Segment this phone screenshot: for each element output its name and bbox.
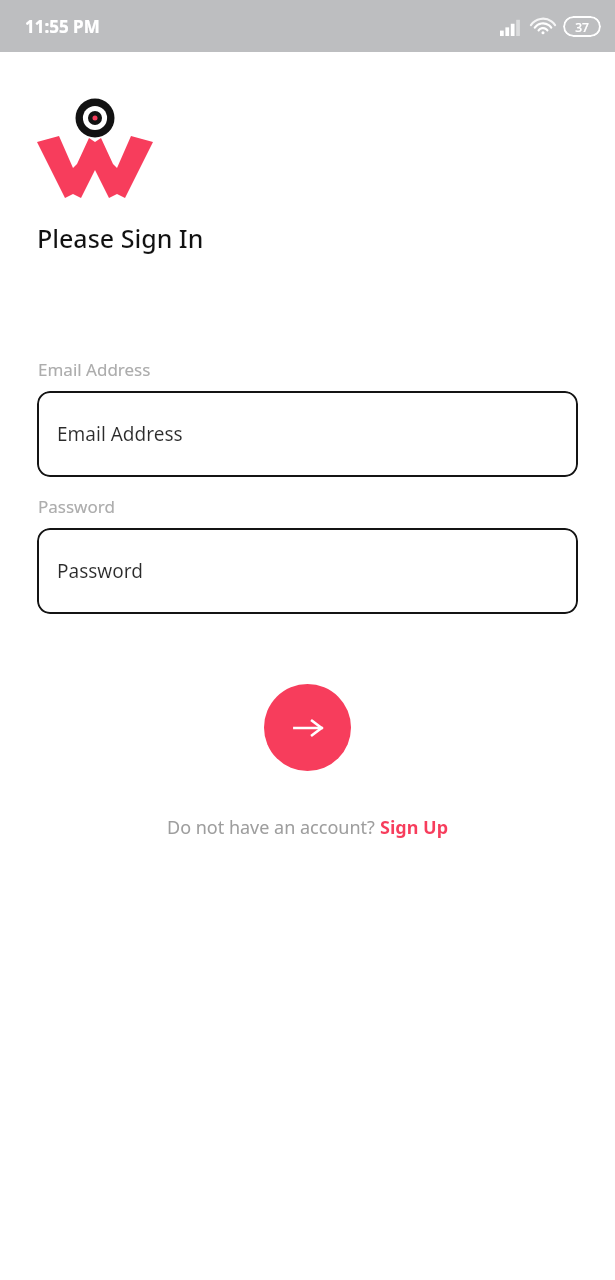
button[interactable]: Sign In [264, 684, 351, 771]
staticText: 37 [575, 19, 589, 35]
staticText: Please Sign In [37, 221, 204, 255]
staticText: Email Address [38, 358, 151, 381]
button[interactable]: Password [37, 528, 578, 614]
button[interactable]: Sign Up [380, 815, 449, 840]
staticText: Password [38, 495, 115, 518]
staticText: Do not have an account? [167, 815, 380, 840]
staticText: Sign Up [380, 815, 449, 840]
button[interactable]: Email Address [37, 391, 578, 477]
staticText: 11:55 PM [25, 15, 100, 38]
staticText: Password [57, 558, 143, 584]
staticText: Email Address [57, 421, 183, 447]
